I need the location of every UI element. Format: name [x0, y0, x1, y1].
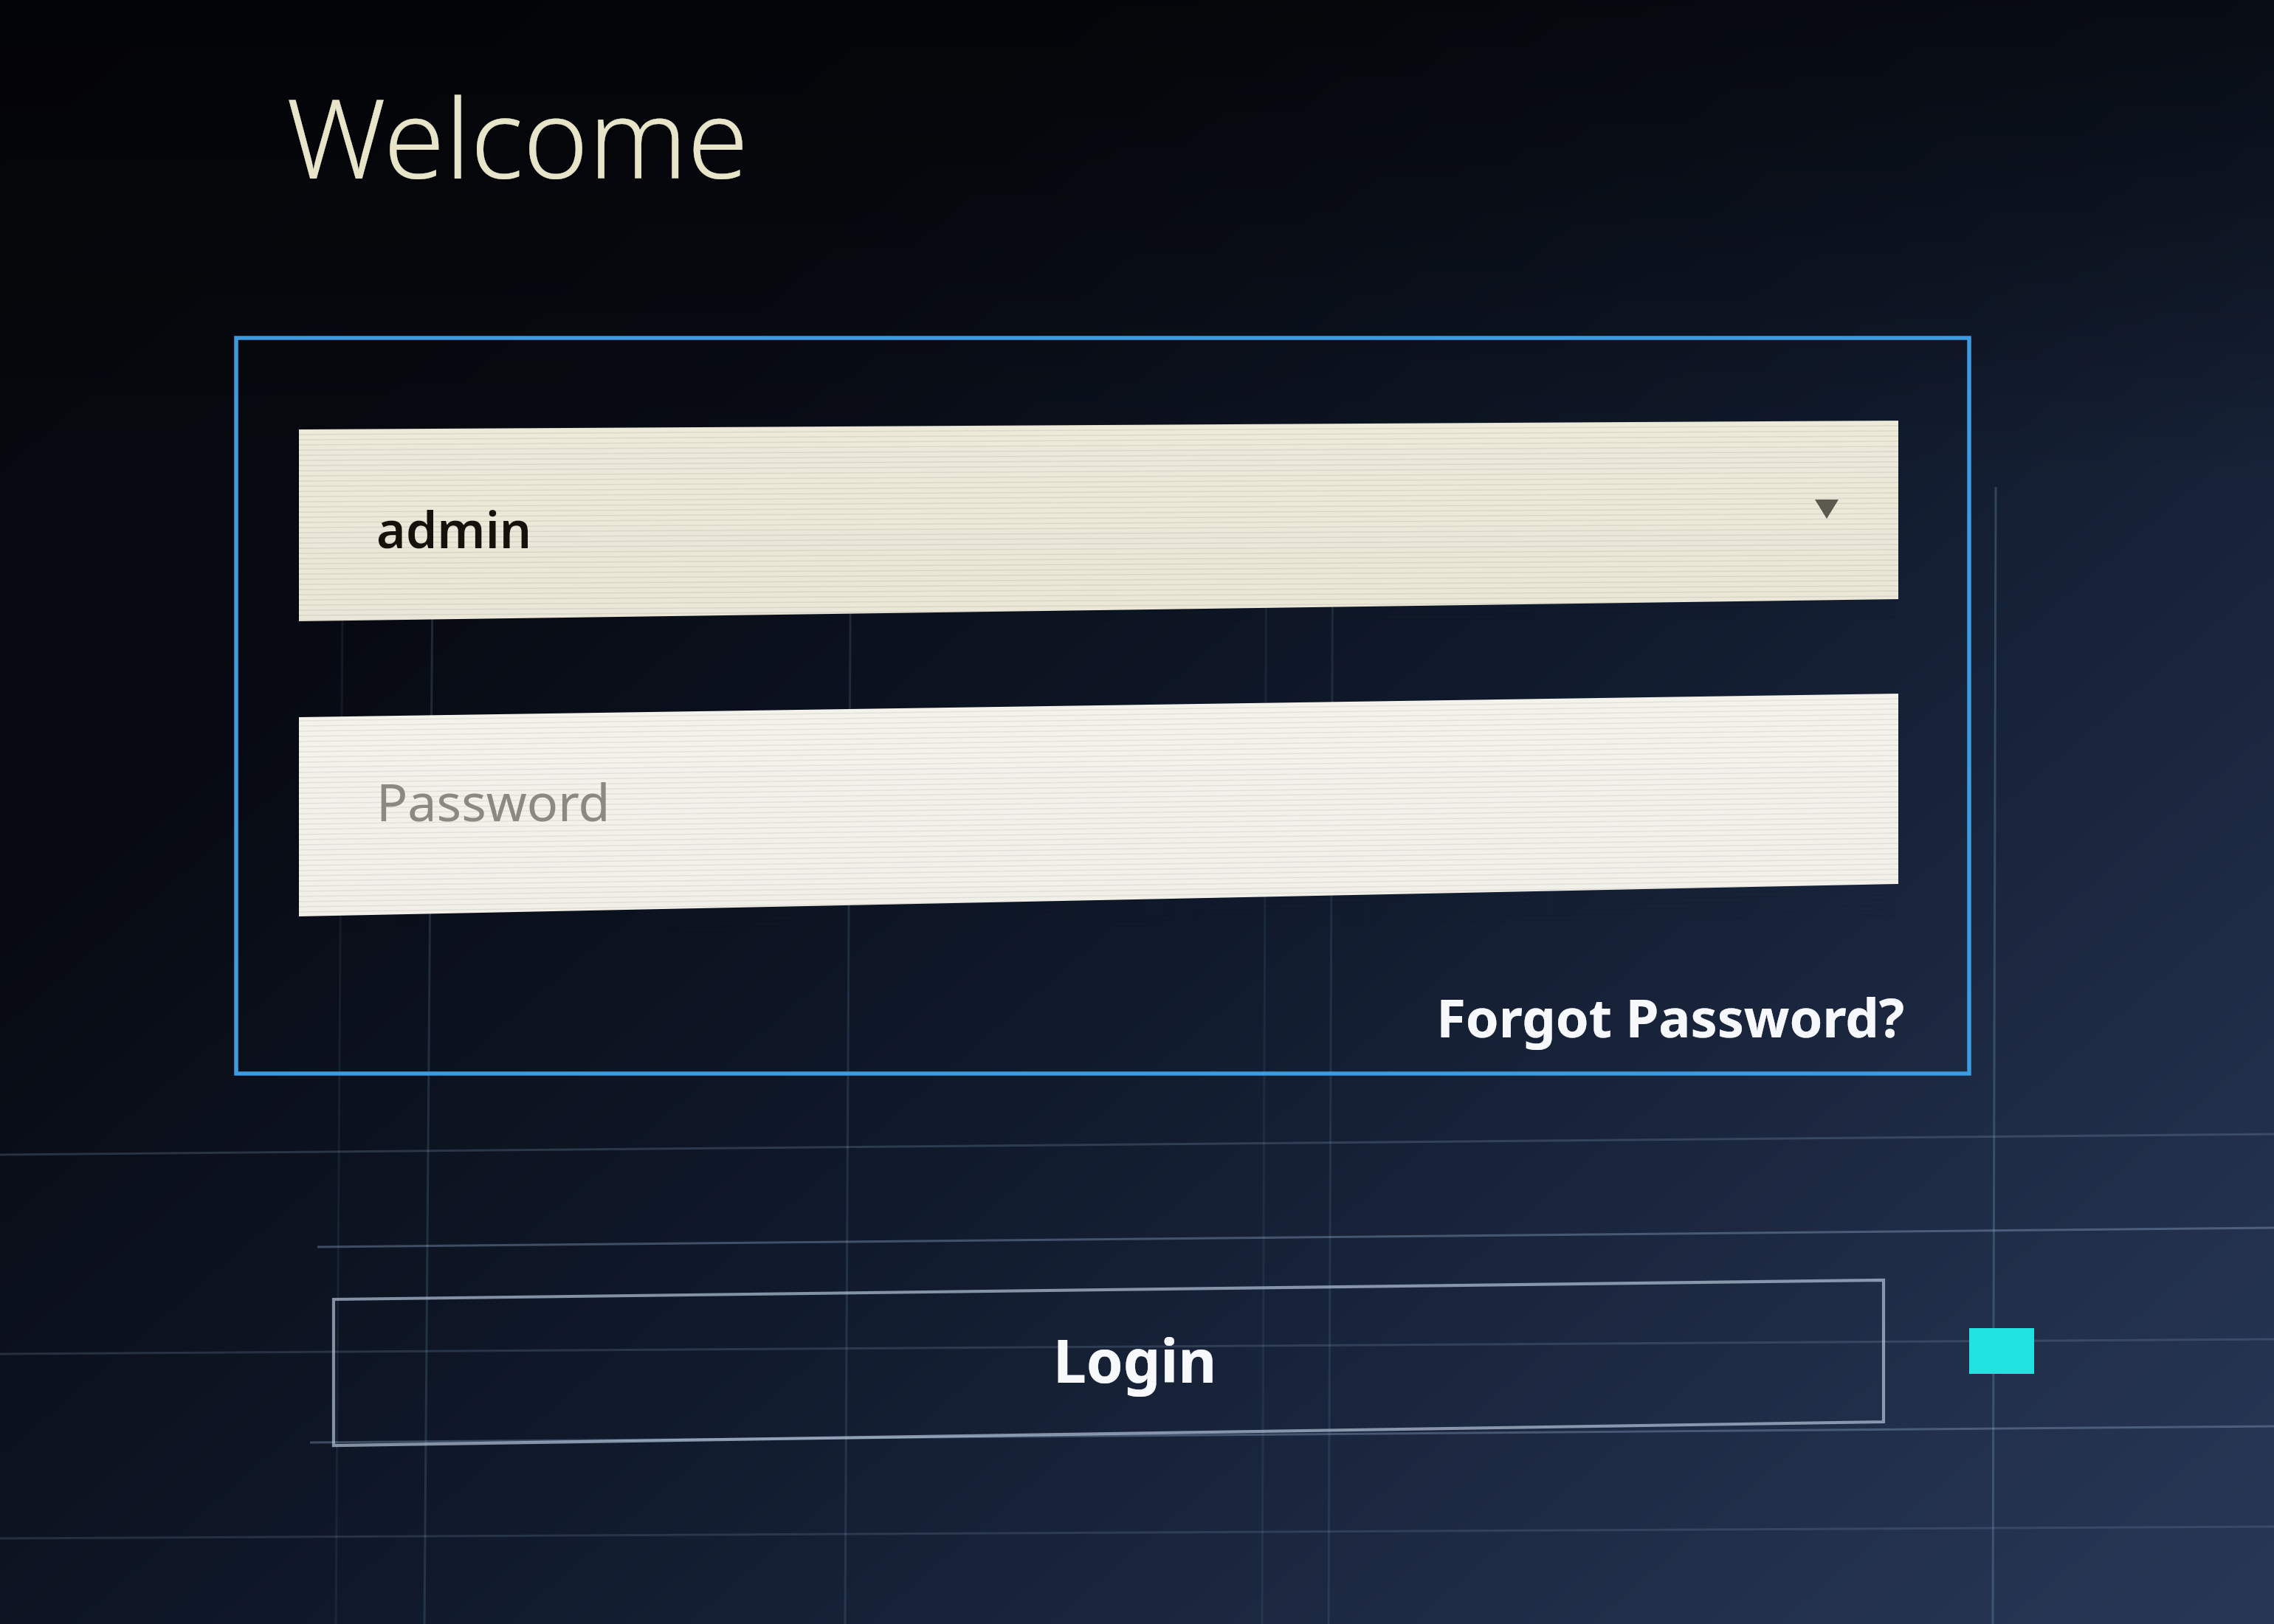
button[interactable]: Forgot Password?: [1388, 972, 1904, 1061]
button[interactable]: Username, admin: [299, 426, 1898, 621]
staticText: Forgot Password?: [1436, 981, 1904, 1053]
button[interactable]: Login: [334, 1278, 1884, 1436]
staticText: Welcome: [286, 61, 749, 211]
staticText: Password: [376, 766, 610, 836]
button[interactable]: Password field: [299, 701, 1898, 915]
staticText: admin: [376, 494, 532, 563]
staticText: Login: [1053, 1319, 1217, 1400]
